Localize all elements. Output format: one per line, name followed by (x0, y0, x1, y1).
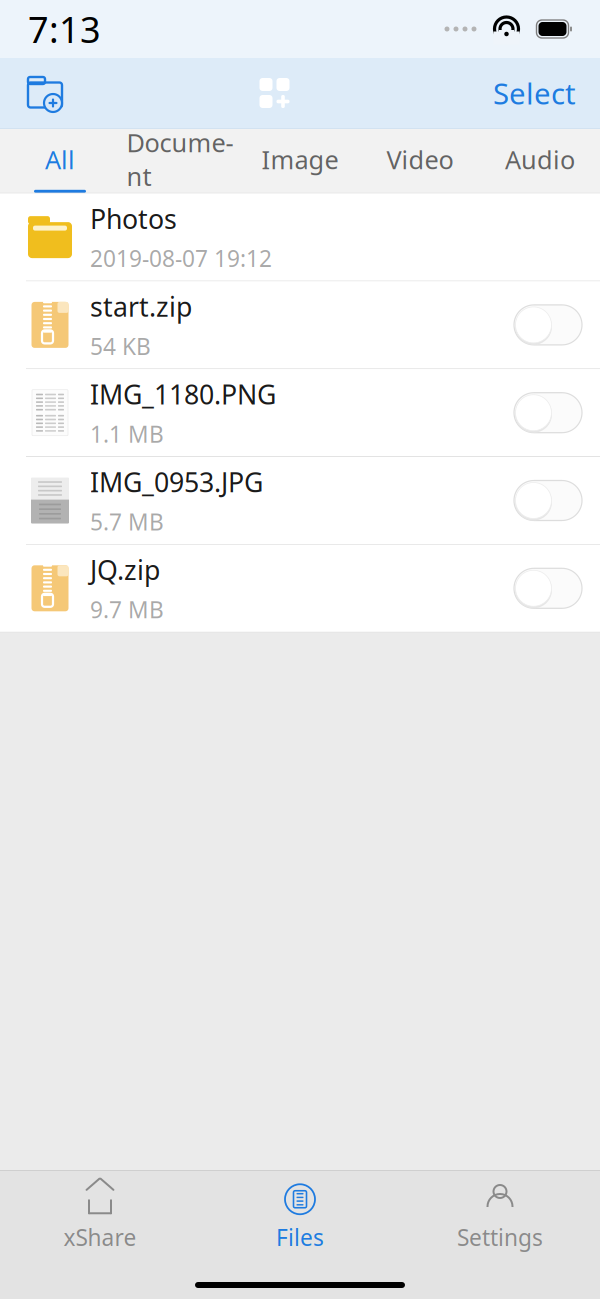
button[interactable]: IMG_1180.PNG (0, 369, 600, 456)
button[interactable]: Video (360, 129, 480, 193)
button[interactable]: Audio (480, 129, 600, 193)
button[interactable]: Files (200, 1179, 400, 1257)
button[interactable]: Select (469, 58, 600, 128)
staticText: Audio (505, 142, 575, 176)
staticText: Image (261, 142, 338, 176)
staticText: 9.7 MB (90, 594, 164, 625)
button[interactable]: start.zip (0, 281, 600, 368)
staticText: IMG_0953.JPG (90, 464, 263, 500)
button[interactable]: Document (120, 129, 240, 193)
button[interactable]: All (0, 129, 120, 193)
staticText: Video (386, 142, 453, 176)
staticText: Files (276, 1222, 324, 1252)
staticText: 54 KB (90, 331, 151, 361)
staticText: 5.7 MB (90, 507, 164, 537)
staticText: Document (126, 126, 233, 193)
button[interactable]: New Folder (10, 58, 80, 128)
button[interactable]: xShare (0, 1179, 200, 1257)
button[interactable]: IMG_0953.JPG (0, 457, 600, 544)
staticText: 1.1 MB (90, 419, 164, 449)
button[interactable]: JQ.zip (0, 545, 600, 632)
staticText: Settings (457, 1222, 543, 1252)
staticText: xShare (63, 1222, 136, 1252)
staticText: 2019-08-07 19:12 (90, 243, 272, 273)
button[interactable]: Image (240, 129, 360, 193)
staticText: All (45, 142, 75, 176)
button[interactable]: Settings (400, 1179, 600, 1257)
button[interactable]: Add Widget (239, 58, 309, 128)
staticText: Photos (90, 201, 177, 236)
staticText: Select (493, 73, 576, 112)
staticText: 7:13 (28, 5, 101, 53)
staticText: JQ.zip (90, 552, 160, 587)
button[interactable]: Photos (0, 194, 600, 281)
staticText: IMG_1180.PNG (90, 376, 276, 412)
staticText: start.zip (90, 289, 192, 324)
